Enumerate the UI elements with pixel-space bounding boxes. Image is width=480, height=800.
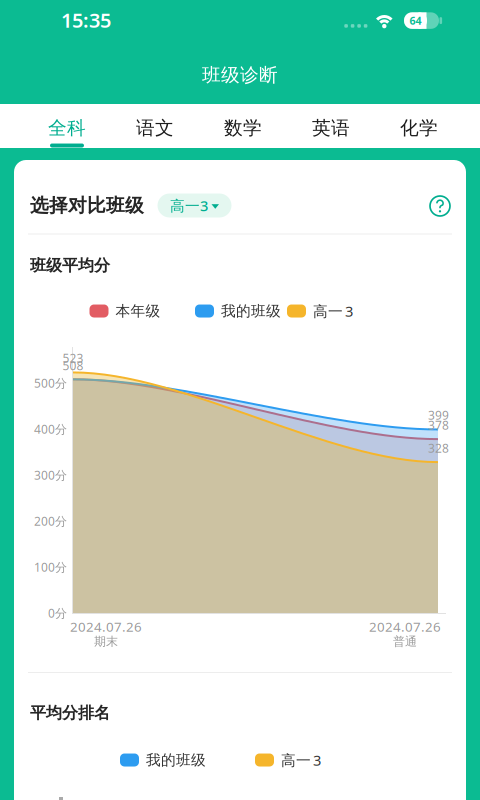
staticText: 399	[428, 407, 449, 423]
staticText: 我的班级	[221, 302, 281, 320]
staticText: 64	[409, 13, 421, 28]
staticText: 高一 3	[281, 750, 321, 770]
staticText: 数学	[224, 116, 262, 139]
button[interactable]: 化学	[375, 106, 463, 150]
staticText: 2024.07.26	[369, 618, 441, 635]
staticText: 化学	[400, 116, 438, 139]
staticText: 班级诊断	[202, 63, 278, 86]
staticText: 378	[428, 417, 449, 433]
staticText: 500分	[34, 375, 67, 391]
staticText: 400分	[34, 421, 67, 437]
staticText: 平均分排名	[30, 703, 110, 723]
staticText: 300分	[34, 467, 67, 483]
button[interactable]: 数学	[199, 106, 287, 150]
staticText: 语文	[136, 116, 174, 139]
staticText: 2024.07.26	[70, 618, 142, 635]
staticText: 选择对比班级	[30, 194, 144, 217]
staticText: 英语	[312, 116, 350, 139]
staticText: 高一 3	[313, 301, 353, 321]
staticText: 全科	[48, 116, 86, 139]
button[interactable]: 语文	[111, 106, 199, 150]
staticText: 0分	[48, 605, 67, 621]
staticText: 15:35	[61, 7, 111, 33]
staticText: 本年级	[115, 302, 160, 320]
button[interactable]: 我的班级	[120, 751, 206, 769]
staticText: 100分	[34, 559, 67, 575]
button[interactable]: 高一 3	[287, 301, 353, 321]
button[interactable]: 全科	[23, 106, 111, 150]
staticText: 我的班级	[146, 751, 206, 769]
button[interactable]: 本年级	[89, 302, 160, 320]
staticText: 班级平均分	[30, 256, 110, 275]
staticText: 普通	[393, 634, 417, 649]
staticText: 523	[62, 350, 83, 366]
button[interactable]: 我的班级	[195, 302, 281, 320]
staticText: 200分	[34, 513, 67, 529]
button[interactable]: 帮助	[426, 192, 454, 220]
button[interactable]: 高一3	[157, 193, 231, 217]
button[interactable]: 高一 3	[255, 750, 321, 770]
staticText: 期末	[94, 634, 118, 649]
staticText: 高一3	[170, 196, 208, 215]
button[interactable]: 英语	[287, 106, 375, 150]
staticText: 508	[62, 357, 83, 373]
staticText: 328	[428, 440, 449, 456]
